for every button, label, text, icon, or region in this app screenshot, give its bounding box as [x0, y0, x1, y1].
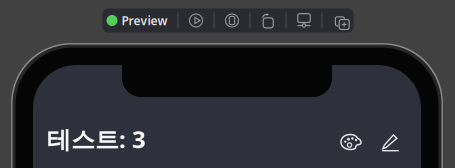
staticText: Preview — [121, 12, 167, 28]
button[interactable]: Preview — [98, 8, 177, 33]
button[interactable]: Preview on device — [214, 8, 249, 33]
staticText: 테스트: 3 — [47, 123, 146, 155]
button[interactable]: Run preview — [178, 8, 213, 33]
button[interactable]: Rotate device — [250, 8, 285, 33]
button[interactable]: Colors — [333, 125, 369, 159]
button[interactable]: Duplicate preview — [322, 8, 357, 33]
button[interactable]: Edit — [374, 125, 407, 159]
button[interactable]: Display options — [286, 8, 321, 33]
